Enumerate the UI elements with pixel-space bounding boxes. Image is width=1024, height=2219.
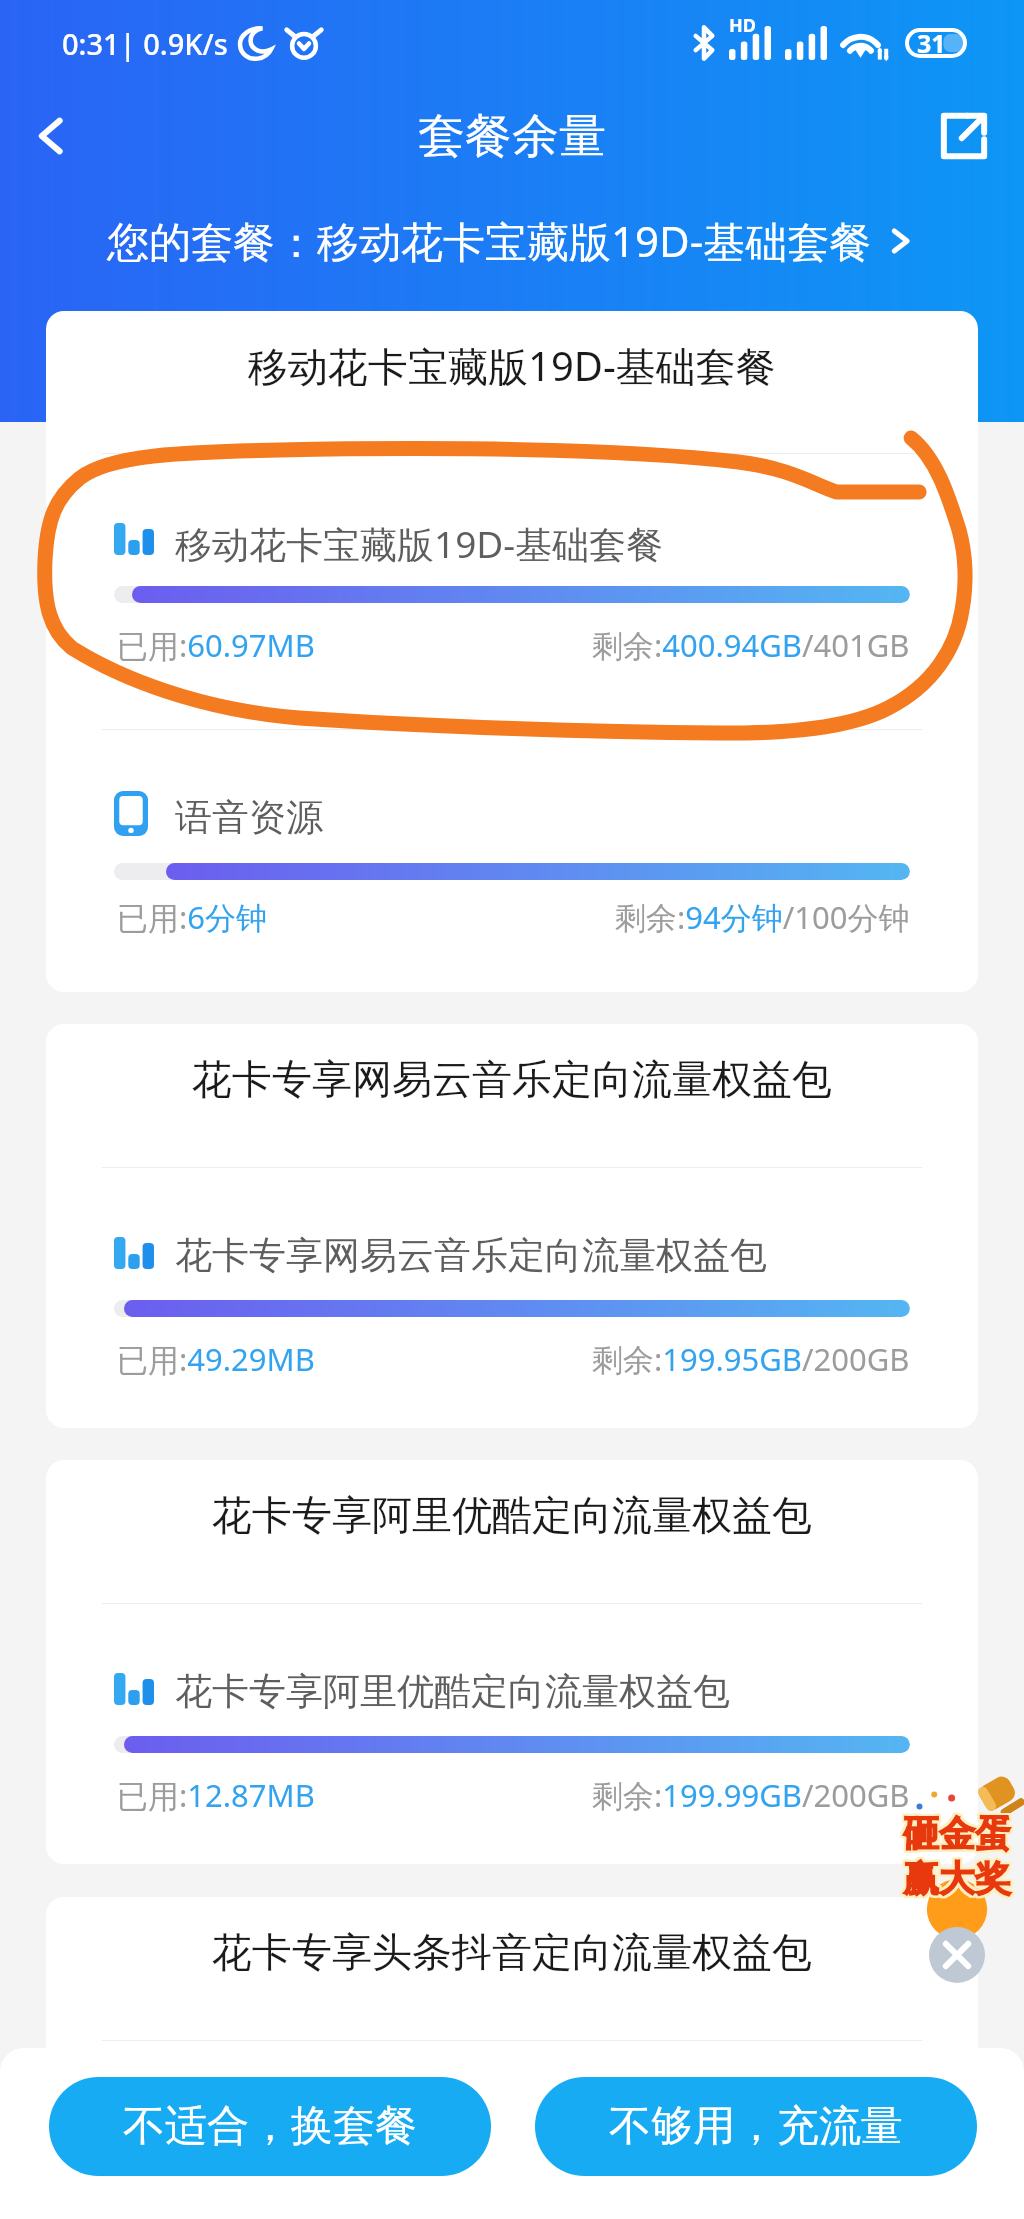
staticText: 语音资源 <box>175 794 323 841</box>
staticText: 花卡专享阿里优酷定向流量权益包 <box>212 1490 812 1540</box>
staticText: 剩余:199.95GB/200GB <box>592 1338 910 1380</box>
staticText: 砸金蛋 <box>901 1811 1009 1856</box>
staticText: 31 <box>917 26 946 60</box>
staticText: 花卡专享网易云音乐定向流量权益包 <box>192 1054 832 1104</box>
staticText: 砸金蛋 <box>901 1809 1009 1854</box>
staticText: 您的套餐：移动花卡宝藏版19D-基础套餐 <box>107 212 872 269</box>
staticText: 移动花卡宝藏版19D-基础套餐 <box>175 518 664 569</box>
staticText: 已用:49.29MB <box>117 1338 315 1380</box>
staticText: 砸金蛋 <box>901 1813 1009 1858</box>
staticText: 移动花卡宝藏版19D-基础套餐 <box>248 338 776 393</box>
button[interactable]: Back <box>20 104 84 168</box>
staticText: 砸金蛋 <box>903 1813 1011 1858</box>
staticText: 砸金蛋 <box>905 1811 1013 1856</box>
staticText: 已用:12.87MB <box>117 1774 315 1816</box>
staticText: 花卡专享头条抖音定向流量权益包 <box>212 1927 812 1977</box>
staticText: 剩余:94分钟/100分钟 <box>615 896 910 938</box>
staticText: 剩余:199.99GB/200GB <box>592 1774 910 1816</box>
staticText: 花卡专享网易云音乐定向流量权益包 <box>175 1232 767 1279</box>
staticText: 花卡专享阿里优酷定向流量权益包 <box>175 1668 730 1715</box>
staticText: 赢大奖 <box>901 1854 1009 1899</box>
staticText: 赢大奖 <box>903 1858 1011 1903</box>
staticText: 不够用，充流量 <box>609 2100 903 2153</box>
staticText: 赢大奖 <box>903 1856 1011 1901</box>
staticText: 赢大奖 <box>905 1858 1013 1903</box>
button[interactable]: Smash golden egg promotion <box>890 1775 1024 1945</box>
staticText: 砸金蛋 <box>905 1813 1013 1858</box>
staticText: HD <box>729 13 756 38</box>
staticText: 已用:60.97MB <box>117 624 315 666</box>
button[interactable]: Close ad <box>929 1927 985 1983</box>
button[interactable]: 您的套餐：移动花卡宝藏版19D-基础套餐 <box>97 204 928 277</box>
staticText: 已用:6分钟 <box>117 896 268 938</box>
staticText: 0:31| 0.9K/s <box>62 24 228 63</box>
staticText: 赢大奖 <box>905 1854 1013 1899</box>
staticText: 剩余:400.94GB/401GB <box>592 624 910 666</box>
staticText: 砸金蛋 <box>905 1809 1013 1854</box>
staticText: 套餐余量 <box>418 107 606 166</box>
staticText: 赢大奖 <box>901 1858 1009 1903</box>
staticText: 花卡专享头条抖音定向流量权益包 <box>175 2105 730 2152</box>
button[interactable]: Share <box>936 108 992 164</box>
staticText: 赢大奖 <box>905 1856 1013 1901</box>
button[interactable]: 不够用，充流量 <box>535 2077 977 2176</box>
staticText: 砸金蛋 <box>903 1809 1011 1854</box>
staticText: 不适合，换套餐 <box>123 2100 417 2153</box>
staticText: 赢大奖 <box>903 1854 1011 1899</box>
staticText: 砸金蛋 <box>903 1811 1011 1856</box>
staticText: 赢大奖 <box>901 1856 1009 1901</box>
button[interactable]: 不适合，换套餐 <box>49 2077 491 2176</box>
